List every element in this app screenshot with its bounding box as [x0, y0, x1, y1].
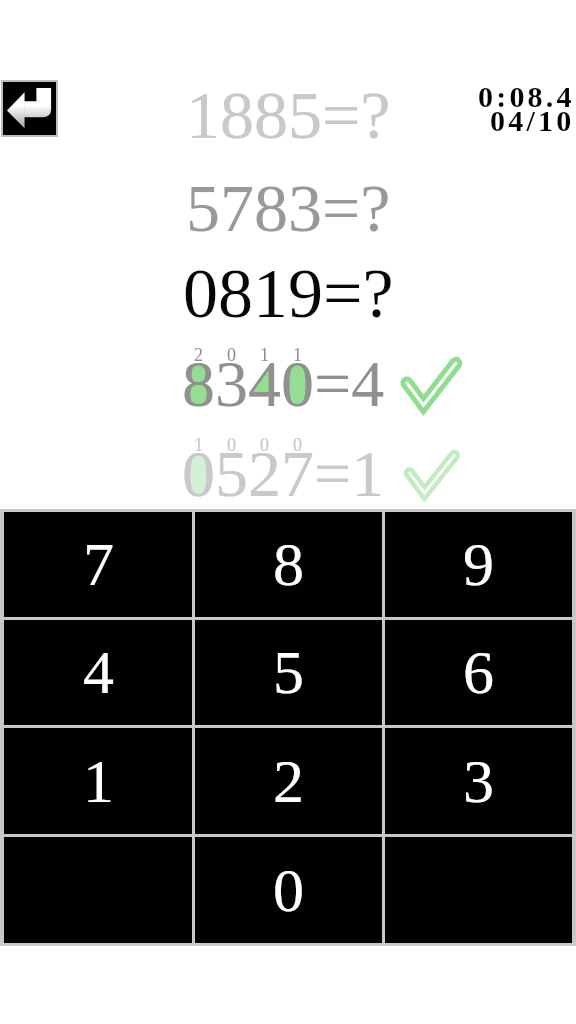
- staticText: 3: [215, 347, 248, 420]
- staticText: 4: [248, 347, 281, 420]
- staticText: 5783=?: [186, 170, 391, 245]
- staticText: 1: [293, 345, 302, 365]
- staticText: 3: [463, 747, 494, 816]
- button[interactable]: 8: [195, 512, 382, 617]
- staticText: 0: [281, 347, 314, 420]
- staticText: =1: [314, 437, 385, 510]
- staticText: 0: [273, 856, 304, 925]
- staticText: =4: [314, 347, 385, 420]
- button[interactable]: 3: [385, 728, 572, 834]
- staticText: 2: [273, 747, 304, 816]
- staticText: 0: [182, 437, 215, 510]
- staticText: 7: [83, 530, 114, 599]
- staticText: 5: [215, 437, 248, 510]
- button[interactable]: 6: [385, 620, 572, 725]
- staticText: 2: [194, 345, 203, 365]
- staticText: 4: [83, 638, 114, 707]
- staticText: 6: [463, 638, 494, 707]
- staticText: 1: [83, 747, 114, 816]
- staticText: 9: [463, 530, 494, 599]
- staticText: 0: [293, 435, 302, 455]
- staticText: 1: [194, 435, 203, 455]
- staticText: 0819=?: [183, 255, 394, 333]
- button[interactable]: 5: [195, 620, 382, 725]
- staticText: 0: [227, 345, 236, 365]
- button[interactable]: 0: [195, 837, 382, 943]
- staticText: 8: [273, 530, 304, 599]
- staticText: 04/10: [490, 104, 575, 137]
- button[interactable]: [3, 82, 56, 135]
- button[interactable]: 4: [4, 620, 192, 725]
- button[interactable]: 1: [4, 728, 192, 834]
- button[interactable]: 2: [195, 728, 382, 834]
- staticText: 8: [182, 347, 215, 420]
- staticText: 0:08.4: [478, 80, 575, 113]
- staticText: 5: [273, 638, 304, 707]
- staticText: 1: [260, 345, 269, 365]
- staticText: 0: [227, 435, 236, 455]
- staticText: 1885=?: [186, 77, 391, 152]
- staticText: 0: [260, 435, 269, 455]
- button[interactable]: 9: [385, 512, 572, 617]
- button[interactable]: 7: [4, 512, 192, 617]
- staticText: 2: [248, 437, 281, 510]
- staticText: 7: [281, 437, 314, 510]
